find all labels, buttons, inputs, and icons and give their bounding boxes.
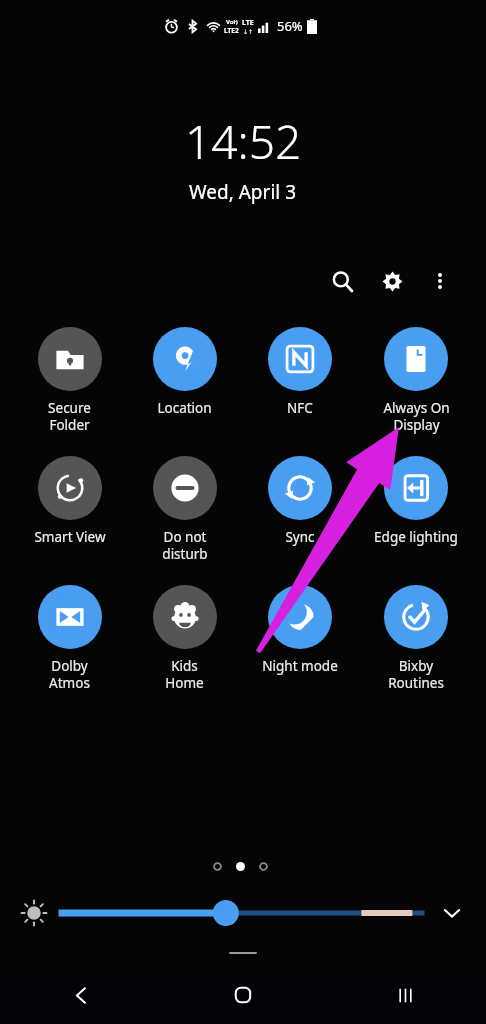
staticText: Dolby Atmos bbox=[49, 657, 90, 692]
staticText: Do not disturb bbox=[162, 528, 208, 563]
staticText: LTE bbox=[242, 18, 254, 28]
staticText: Night mode bbox=[262, 657, 338, 675]
staticText: Secure Folder bbox=[48, 399, 91, 434]
button[interactable]: Sync bbox=[242, 454, 358, 548]
staticText: ↓↑ bbox=[243, 28, 254, 35]
button[interactable]: Smart View bbox=[12, 454, 127, 548]
staticText: NFC bbox=[287, 399, 313, 417]
staticText: LTE2 bbox=[224, 26, 239, 35]
button[interactable]: Search bbox=[320, 259, 364, 303]
staticText: 14:52 bbox=[185, 110, 302, 173]
staticText: Bixby Routines bbox=[388, 657, 444, 692]
button[interactable]: Kids Home bbox=[127, 583, 242, 694]
staticText: Location bbox=[157, 399, 212, 417]
button[interactable] bbox=[255, 858, 271, 874]
button[interactable]: Always On Display bbox=[358, 325, 474, 436]
button[interactable]: More options bbox=[420, 261, 460, 301]
button[interactable]: Back bbox=[0, 966, 162, 1024]
button[interactable] bbox=[58, 893, 426, 933]
staticText: Wed, April 3 bbox=[189, 179, 297, 205]
staticText: Sync bbox=[285, 528, 315, 546]
button[interactable]: Location bbox=[127, 325, 242, 419]
button[interactable]: Edge lighting bbox=[358, 454, 474, 548]
button[interactable]: NFC bbox=[242, 325, 358, 419]
button[interactable]: Auto brightness bbox=[14, 893, 54, 933]
button[interactable] bbox=[209, 858, 225, 874]
button[interactable]: Settings bbox=[370, 259, 414, 303]
staticText: Voŀ) bbox=[226, 18, 238, 26]
button[interactable]: Recent apps bbox=[324, 966, 486, 1024]
staticText: Kids Home bbox=[165, 657, 204, 692]
button[interactable]: Night mode bbox=[242, 583, 358, 677]
staticText: Always On Display bbox=[383, 399, 450, 434]
button[interactable]: Home bbox=[162, 966, 324, 1024]
staticText: 56% bbox=[277, 17, 303, 35]
button[interactable]: Expand brightness settings bbox=[432, 893, 472, 933]
button[interactable]: Secure Folder bbox=[12, 325, 127, 436]
button[interactable] bbox=[232, 858, 248, 874]
button[interactable]: Bixby Routines bbox=[358, 583, 474, 694]
staticText: Smart View bbox=[34, 528, 106, 546]
button[interactable]: Do not disturb bbox=[127, 454, 242, 565]
button[interactable]: Dolby Atmos bbox=[12, 583, 127, 694]
staticText: Edge lighting bbox=[374, 528, 458, 546]
